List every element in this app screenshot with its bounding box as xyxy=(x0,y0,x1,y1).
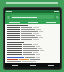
button[interactable] xyxy=(24,20,42,24)
button[interactable]: Recents xyxy=(42,63,60,67)
button[interactable] xyxy=(5,20,24,24)
button[interactable] xyxy=(11,15,54,19)
button[interactable] xyxy=(42,20,60,24)
button[interactable]: Back xyxy=(5,63,24,67)
button[interactable]: Search xyxy=(55,15,59,19)
button[interactable]: Menu xyxy=(6,15,10,19)
button[interactable]: Home xyxy=(24,63,42,67)
